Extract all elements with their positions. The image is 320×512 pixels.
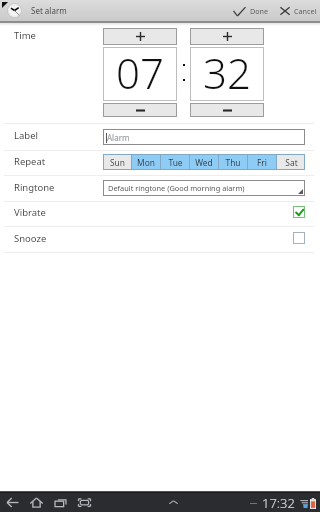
button[interactable]: Decrease [103, 103, 177, 117]
staticText: Done [250, 6, 269, 16]
staticText: 07 [116, 44, 164, 98]
button[interactable]: Mon [132, 154, 160, 170]
button[interactable]: Default ringtone (Good morning alarm) [103, 180, 305, 196]
staticText: Set alarm [31, 5, 67, 16]
button[interactable]: Wed [190, 154, 218, 170]
staticText: Repeat [14, 155, 46, 168]
button[interactable]: Thu [219, 154, 247, 170]
button[interactable]: 17:32 [250, 494, 320, 512]
button[interactable]: Home [24, 493, 48, 512]
button[interactable]: Increase [103, 28, 177, 45]
staticText: Time [14, 29, 36, 42]
button[interactable]: Done [231, 6, 271, 16]
staticText: Tue [168, 157, 183, 168]
staticText: Wed [195, 157, 213, 168]
button[interactable]: Sat [277, 154, 305, 170]
button[interactable]: Decrease [190, 103, 264, 117]
staticText: Ringtone [14, 181, 55, 194]
button[interactable]: Sun [103, 154, 131, 170]
staticText: Fri [257, 157, 267, 168]
button[interactable]: Expand notifications [160, 493, 186, 512]
button[interactable]: Tue [161, 154, 189, 170]
button[interactable]: Alarm clock app [7, 3, 22, 18]
button[interactable]: Fri [248, 154, 276, 170]
staticText: Sat [285, 157, 298, 168]
staticText: 32 [203, 44, 251, 98]
staticText: Alarm [107, 132, 130, 143]
staticText: Cancel [294, 6, 317, 16]
staticText: Label [14, 129, 38, 142]
button[interactable]: Screenshot [72, 493, 96, 512]
button[interactable]: Checked [293, 206, 305, 218]
button[interactable]: Increase [190, 28, 264, 45]
staticText: Snooze [14, 232, 47, 245]
button[interactable]: Back [0, 493, 24, 512]
staticText: 17:32 [262, 494, 295, 512]
staticText: Mon [137, 157, 155, 168]
staticText: Vibrate [14, 206, 46, 219]
button[interactable]: Alarm [103, 129, 305, 145]
staticText: Thu [225, 157, 241, 168]
button[interactable]: Cancel [278, 6, 319, 16]
button[interactable]: Recent apps [48, 493, 72, 512]
staticText: Default ringtone (Good morning alarm) [108, 183, 245, 193]
button[interactable]: Unchecked [293, 232, 305, 244]
staticText: Sun [110, 157, 125, 168]
